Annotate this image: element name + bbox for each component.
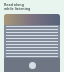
button[interactable]: Play [29,62,36,69]
staticText: Read along while listening [4,2,31,11]
button[interactable]: Rewind [4,58,60,72]
